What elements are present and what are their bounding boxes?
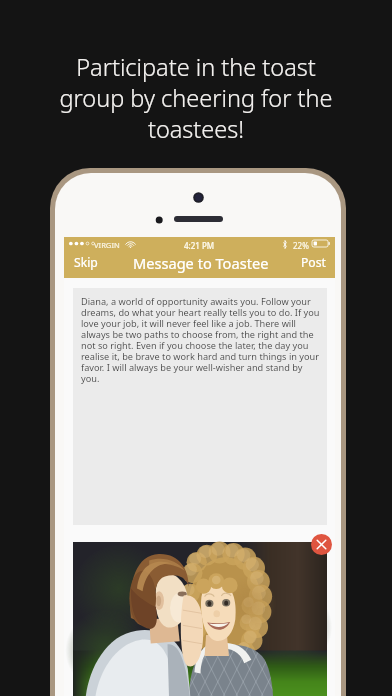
staticText: Participate in the toast group by cheeri… [0, 51, 392, 145]
staticText: Diana, a world of opportunity awaits you… [81, 295, 320, 384]
staticText: 22% [293, 240, 309, 251]
staticText: 4:21 PM [184, 240, 215, 251]
staticText: VIRGIN [94, 240, 120, 250]
button[interactable]: Post [292, 251, 335, 278]
button[interactable]: Remove photo [311, 534, 332, 555]
staticText: Post [301, 254, 326, 271]
staticText: Skip [74, 254, 98, 271]
staticText: Message to Toastee [133, 253, 269, 273]
button[interactable]: Skip [65, 251, 107, 278]
